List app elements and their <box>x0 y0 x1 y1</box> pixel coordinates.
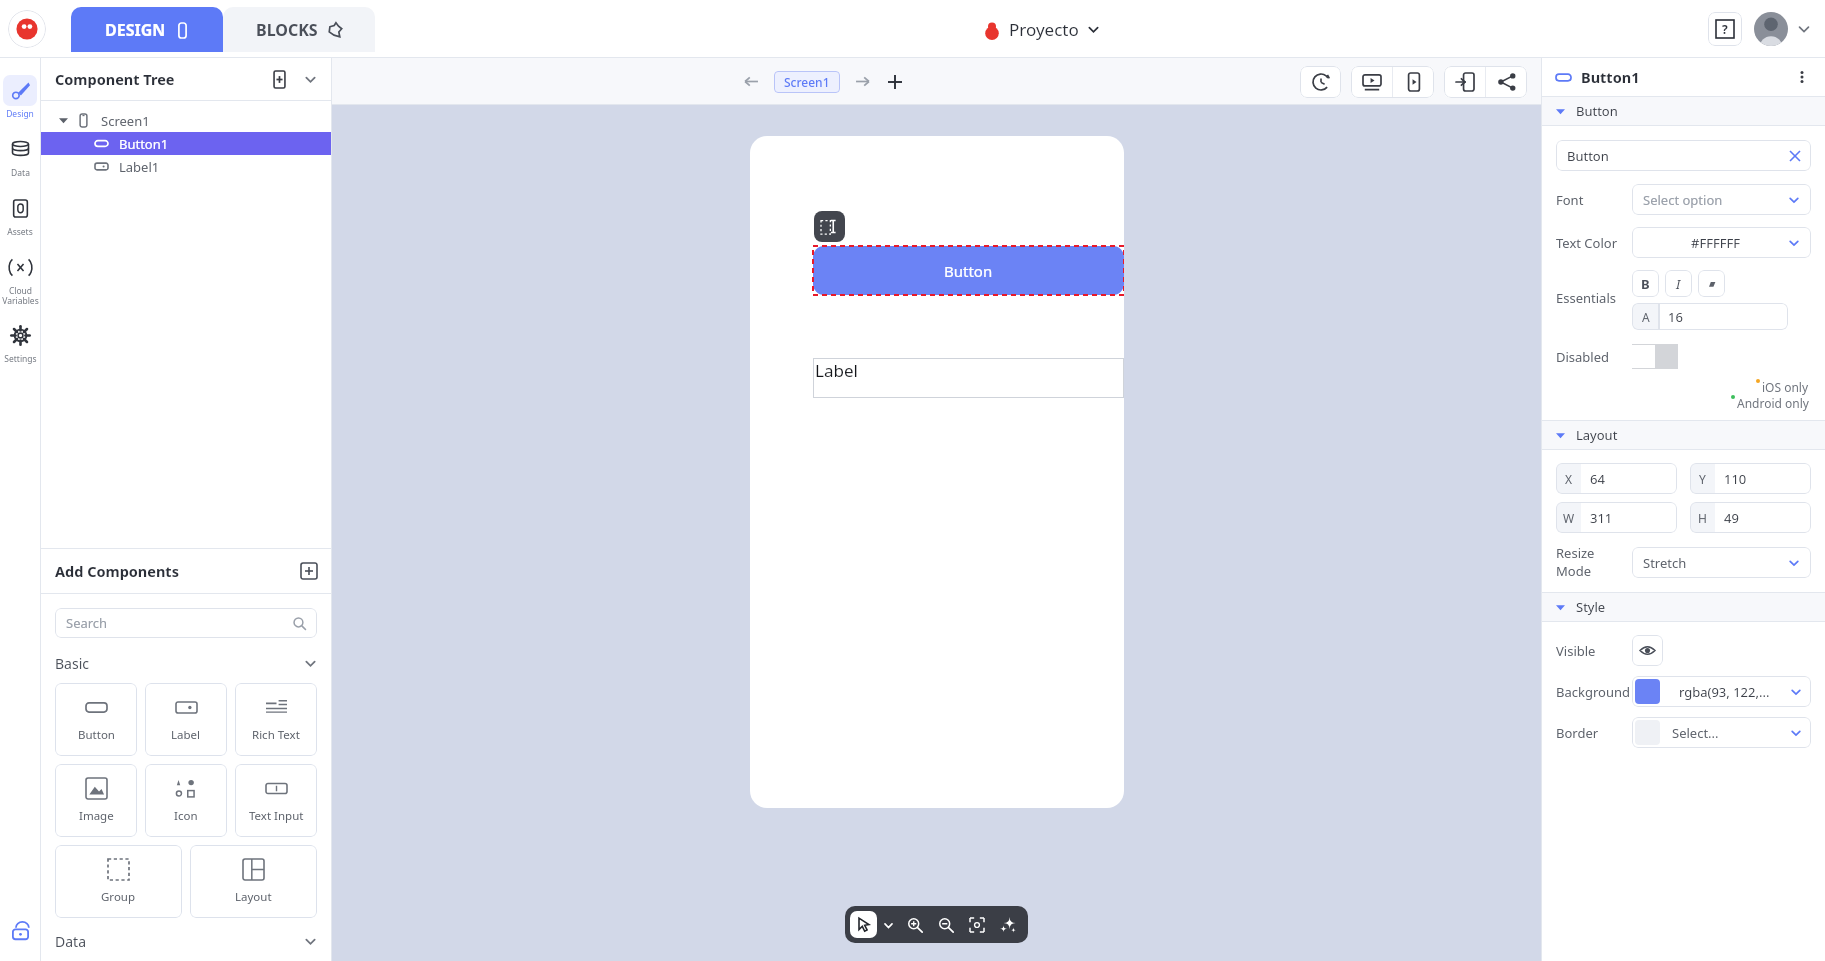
button[interactable]: Proyecto <box>982 18 1100 41</box>
button[interactable]: Visible <box>1632 635 1663 666</box>
button[interactable]: Help <box>1708 12 1742 46</box>
staticText: Visible <box>1556 642 1596 660</box>
staticText: Assets <box>7 226 33 238</box>
button[interactable]: More options <box>1793 68 1811 86</box>
button[interactable]: Zoom in <box>899 909 930 940</box>
button[interactable]: Button <box>1542 97 1825 125</box>
button[interactable]: Export <box>1444 66 1485 98</box>
button[interactable]: Stretch <box>1632 547 1811 578</box>
button[interactable]: Group <box>55 845 182 918</box>
button[interactable]: Previous screen <box>743 73 760 90</box>
button[interactable]: Collapse <box>304 73 317 86</box>
button[interactable]: Layout <box>1542 421 1825 449</box>
button[interactable]: Label1 <box>41 155 331 178</box>
button[interactable]: Label <box>813 358 1124 398</box>
button[interactable]: Text Input <box>235 764 317 837</box>
staticText: Label <box>815 359 858 382</box>
button[interactable]: Select option <box>1632 184 1811 215</box>
button[interactable]: Button <box>813 246 1124 295</box>
staticText: Design <box>6 108 34 120</box>
button[interactable]: Y <box>1690 463 1811 494</box>
button[interactable]: Next screen <box>854 73 871 90</box>
button[interactable]: Label <box>145 683 227 756</box>
button[interactable]: Settings <box>0 317 40 376</box>
button[interactable]: Lock <box>5 915 35 945</box>
staticText: Label1 <box>119 158 160 176</box>
button[interactable]: AI assist <box>992 909 1023 940</box>
button[interactable]: Style <box>1542 593 1825 621</box>
button[interactable]: Assets <box>0 190 40 249</box>
button[interactable]: Basic <box>55 654 317 673</box>
button[interactable]: Strikethrough <box>1698 270 1725 297</box>
staticText: Resize Mode <box>1556 544 1632 580</box>
staticText: rgba(93, 122,... <box>1679 683 1770 701</box>
button[interactable]: Data <box>0 131 40 190</box>
button[interactable]: Search <box>55 608 317 638</box>
button[interactable]: #FFFFFF <box>1632 227 1811 258</box>
staticText: #FFFFFF <box>1691 234 1740 252</box>
button[interactable]: DESIGN <box>71 7 223 52</box>
button[interactable]: W <box>1556 502 1677 533</box>
button[interactable]: Button <box>1556 140 1811 171</box>
button[interactable]: Home <box>8 10 46 48</box>
button[interactable]: Disabled toggle <box>1632 344 1678 369</box>
button[interactable]: Image <box>55 764 137 837</box>
staticText: 49 <box>1724 509 1739 527</box>
button[interactable]: BLOCKS <box>223 7 375 52</box>
button[interactable]: Add screen <box>887 74 903 90</box>
staticText: Button <box>1567 147 1609 165</box>
button[interactable]: 16 <box>1659 303 1788 330</box>
staticText: DESIGN <box>105 19 166 41</box>
button[interactable]: Italic <box>1665 270 1692 297</box>
button[interactable]: Share <box>1486 66 1527 98</box>
button[interactable]: Rich Text <box>235 683 317 756</box>
staticText: BLOCKS <box>256 19 318 41</box>
button[interactable]: Add screen <box>271 71 288 88</box>
button[interactable]: Fit to screen <box>961 909 992 940</box>
button[interactable]: Preview phone <box>1393 66 1434 98</box>
button[interactable]: Bold <box>1632 270 1659 297</box>
staticText: I <box>1676 275 1681 293</box>
button[interactable]: Cloud Variables <box>0 249 40 317</box>
button[interactable]: Button1 <box>41 132 331 155</box>
staticText: Android only <box>1737 395 1809 411</box>
button[interactable]: Select... <box>1632 717 1811 748</box>
staticText: Search <box>66 614 108 632</box>
staticText: Text Input <box>249 808 304 824</box>
staticText: Essentials <box>1556 289 1616 307</box>
staticText: Image <box>79 808 114 824</box>
button[interactable]: Select tool <box>850 911 877 938</box>
button[interactable]: Account <box>1754 12 1788 46</box>
button[interactable]: Screen1 <box>774 71 840 93</box>
staticText: Select... <box>1672 724 1719 742</box>
staticText: Screen1 <box>101 112 150 130</box>
button[interactable]: Screen1 <box>41 109 331 132</box>
staticText: Basic <box>55 654 89 673</box>
button[interactable]: Font size <box>1632 303 1659 330</box>
staticText: 64 <box>1590 470 1605 488</box>
button[interactable]: Account menu <box>1797 22 1811 36</box>
button[interactable]: Design <box>0 72 40 131</box>
staticText: 311 <box>1590 509 1613 527</box>
staticText: Y <box>1699 471 1706 487</box>
staticText: Component Tree <box>55 69 175 89</box>
staticText: Style <box>1576 598 1606 616</box>
button[interactable]: X <box>1556 463 1677 494</box>
staticText: Data <box>11 167 30 179</box>
button[interactable]: Add component <box>301 563 317 579</box>
button[interactable]: rgba(93, 122,... <box>1632 676 1811 707</box>
button[interactable]: Zoom out <box>930 909 961 940</box>
button[interactable]: Layout <box>190 845 317 918</box>
staticText: Add Components <box>55 561 179 581</box>
staticText: Label <box>171 727 201 743</box>
button[interactable]: Tool options <box>877 914 899 936</box>
staticText: Layout <box>1576 426 1618 444</box>
button[interactable]: Preview web <box>1351 66 1392 98</box>
button[interactable]: H <box>1690 502 1811 533</box>
button[interactable]: History <box>1300 66 1341 98</box>
staticText: Button <box>78 727 115 743</box>
button[interactable]: Button <box>55 683 137 756</box>
button[interactable]: Icon <box>145 764 227 837</box>
staticText: Data <box>55 932 86 951</box>
staticText: W <box>1563 510 1575 526</box>
